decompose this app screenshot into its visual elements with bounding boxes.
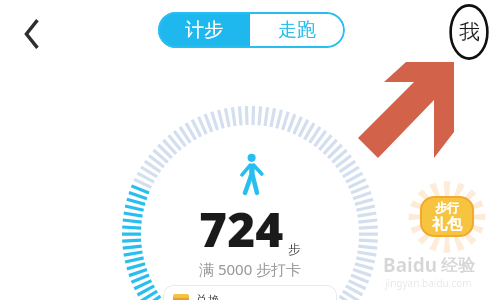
staticText: 计步 [185,18,223,42]
button[interactable]: 兑换 [163,285,337,300]
staticText: 步行 [435,200,459,215]
button[interactable]: 步行礼包 [416,192,478,242]
staticText: Baidu [383,252,438,278]
button[interactable]: 走跑 [250,12,343,48]
staticText: 经验 [441,255,475,276]
staticText: 我 [459,19,480,45]
staticText: jingyan.baidu.com [385,276,472,290]
staticText: 礼包 [432,215,462,234]
staticText: 步 [288,241,301,257]
staticText: 724 [199,196,284,261]
button[interactable]: Me [446,1,492,63]
button[interactable]: Back [8,10,56,58]
button[interactable]: 计步 [158,12,250,48]
staticText: 满 5000 步打卡 [199,259,302,279]
staticText: 走跑 [278,18,316,42]
staticText: 兑换 [195,292,221,300]
